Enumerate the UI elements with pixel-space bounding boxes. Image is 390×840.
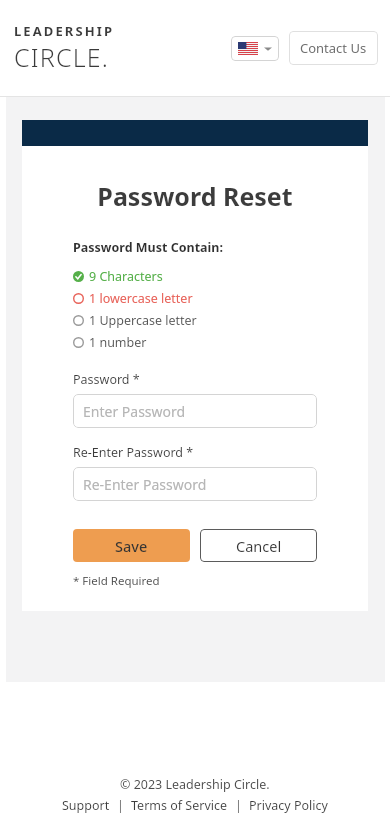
staticText: © 2023 Leadership Circle. [120, 776, 270, 793]
staticText: Support [62, 797, 110, 814]
button[interactable]: Save [73, 529, 190, 562]
staticText: 1 number [89, 334, 147, 351]
button[interactable]: Select language [231, 36, 279, 61]
staticText: | [235, 797, 242, 814]
staticText: | [117, 797, 124, 814]
staticText: CIRCLE. [14, 40, 110, 74]
button[interactable]: Terms of Service [131, 797, 228, 814]
staticText: Password Reset [73, 179, 317, 213]
staticText: Terms of Service [131, 797, 228, 814]
staticText: Password Must Contain: [73, 239, 223, 256]
staticText: Contact Us [300, 39, 367, 57]
button[interactable]: Support [62, 797, 110, 814]
staticText: Password * [73, 371, 140, 388]
button[interactable]: Cancel [200, 529, 317, 562]
staticText: Re-Enter Password [83, 475, 207, 494]
button[interactable]: Enter Password [73, 394, 317, 428]
staticText: Re-Enter Password * [73, 444, 194, 461]
button[interactable]: Privacy Policy [249, 797, 328, 814]
staticText: 1 Uppercase letter [89, 312, 197, 329]
staticText: Privacy Policy [249, 797, 328, 814]
staticText: LEADERSHIP [14, 22, 115, 40]
staticText: * Field Required [73, 573, 160, 589]
staticText: Save [115, 536, 148, 556]
button[interactable]: Re-Enter Password [73, 467, 317, 501]
staticText: 9 Characters [89, 268, 163, 285]
staticText: Cancel [236, 536, 282, 556]
staticText: Enter Password [83, 402, 186, 421]
staticText: 1 lowercase letter [89, 290, 193, 307]
button[interactable]: Contact Us [289, 31, 378, 65]
